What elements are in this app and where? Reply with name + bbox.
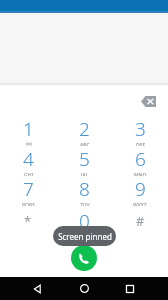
button[interactable]: 8 bbox=[56, 176, 112, 206]
button[interactable]: 0 bbox=[56, 206, 112, 236]
staticText: 0 bbox=[79, 208, 90, 234]
button[interactable]: Home bbox=[72, 277, 96, 300]
staticText: GHI bbox=[24, 172, 34, 176]
staticText: 4 bbox=[23, 146, 34, 172]
staticText: 8 bbox=[79, 176, 90, 202]
staticText: MNO bbox=[134, 172, 147, 176]
button[interactable]: 6 bbox=[112, 146, 168, 176]
staticText: 7 bbox=[23, 176, 34, 202]
staticText: # bbox=[136, 212, 145, 230]
staticText: JKL bbox=[81, 172, 89, 176]
staticText: ABC bbox=[80, 142, 90, 146]
staticText: Screen pinned bbox=[58, 231, 112, 242]
staticText: WXYZ bbox=[133, 202, 147, 206]
button[interactable]: Back bbox=[26, 277, 50, 300]
staticText: * bbox=[24, 212, 32, 230]
button[interactable]: * bbox=[0, 206, 56, 236]
button[interactable]: 5 bbox=[56, 146, 112, 176]
staticText: TUV bbox=[80, 202, 90, 206]
staticText: 1 bbox=[23, 116, 34, 142]
staticText: 6 bbox=[135, 146, 146, 172]
button[interactable]: 3 bbox=[112, 116, 168, 146]
button[interactable]: Call bbox=[71, 245, 97, 271]
staticText: PQRS bbox=[22, 202, 35, 206]
button[interactable]: 9 bbox=[112, 176, 168, 206]
button[interactable]: # bbox=[112, 206, 168, 236]
staticText: 2 bbox=[79, 116, 90, 142]
button[interactable]: Backspace bbox=[136, 89, 160, 113]
button[interactable]: 2 bbox=[56, 116, 112, 146]
button[interactable]: 4 bbox=[0, 146, 56, 176]
button[interactable]: 1 bbox=[0, 116, 56, 146]
staticText: 9 bbox=[135, 176, 146, 202]
staticText: 3 bbox=[135, 116, 146, 142]
staticText: 5 bbox=[79, 146, 90, 172]
button[interactable]: 7 bbox=[0, 176, 56, 206]
staticText: DEF bbox=[136, 142, 146, 146]
button[interactable]: Recent apps bbox=[118, 277, 142, 300]
